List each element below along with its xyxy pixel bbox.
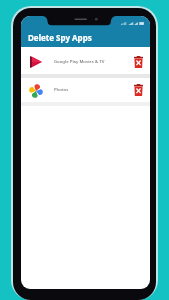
button[interactable]: Photos bbox=[21, 78, 150, 102]
staticText: Google Play Movies & TV bbox=[54, 58, 105, 64]
staticText: Delete Spy Apps bbox=[28, 32, 92, 43]
button[interactable]: Delete app bbox=[131, 55, 145, 69]
button[interactable]: Delete app bbox=[131, 83, 145, 97]
staticText: Photos bbox=[54, 86, 69, 92]
button[interactable]: Google Play Movies & TV bbox=[21, 49, 150, 74]
